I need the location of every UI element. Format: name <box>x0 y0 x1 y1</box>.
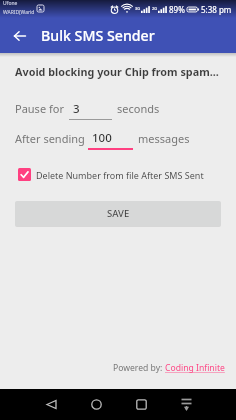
button[interactable]: Home <box>83 389 109 420</box>
staticText: 5:38 pm <box>201 4 232 15</box>
staticText: 100 <box>92 130 112 146</box>
staticText: SAVE <box>107 207 130 220</box>
button[interactable]: Back <box>38 389 64 420</box>
button[interactable]: Recent apps <box>128 389 154 420</box>
staticText: WARID(Warid <box>3 9 35 16</box>
button[interactable]: Hide keyboard <box>173 389 199 420</box>
staticText: messages <box>138 131 190 146</box>
staticText: Delete Number from file After SMS Sent <box>36 169 204 181</box>
staticText: Powered by: <box>113 362 165 374</box>
staticText: After sending <box>15 131 85 146</box>
staticText: Avoid blocking your Chip from spam... <box>15 64 219 79</box>
staticText: Pause for <box>15 101 64 116</box>
staticText: Ufone <box>3 0 18 7</box>
staticText: Bulk SMS Sender <box>41 26 155 45</box>
staticText: 2G <box>152 6 158 11</box>
staticText: 3G <box>135 6 141 11</box>
staticText: 3 <box>73 101 80 117</box>
button[interactable]: Delete Number from file After SMS Sent <box>18 168 204 181</box>
button[interactable]: SAVE <box>15 201 221 226</box>
staticText: 89% <box>169 4 185 15</box>
staticText: seconds <box>117 101 160 116</box>
button[interactable]: Coding Infinite <box>165 362 225 374</box>
button[interactable]: Back <box>2 18 37 53</box>
